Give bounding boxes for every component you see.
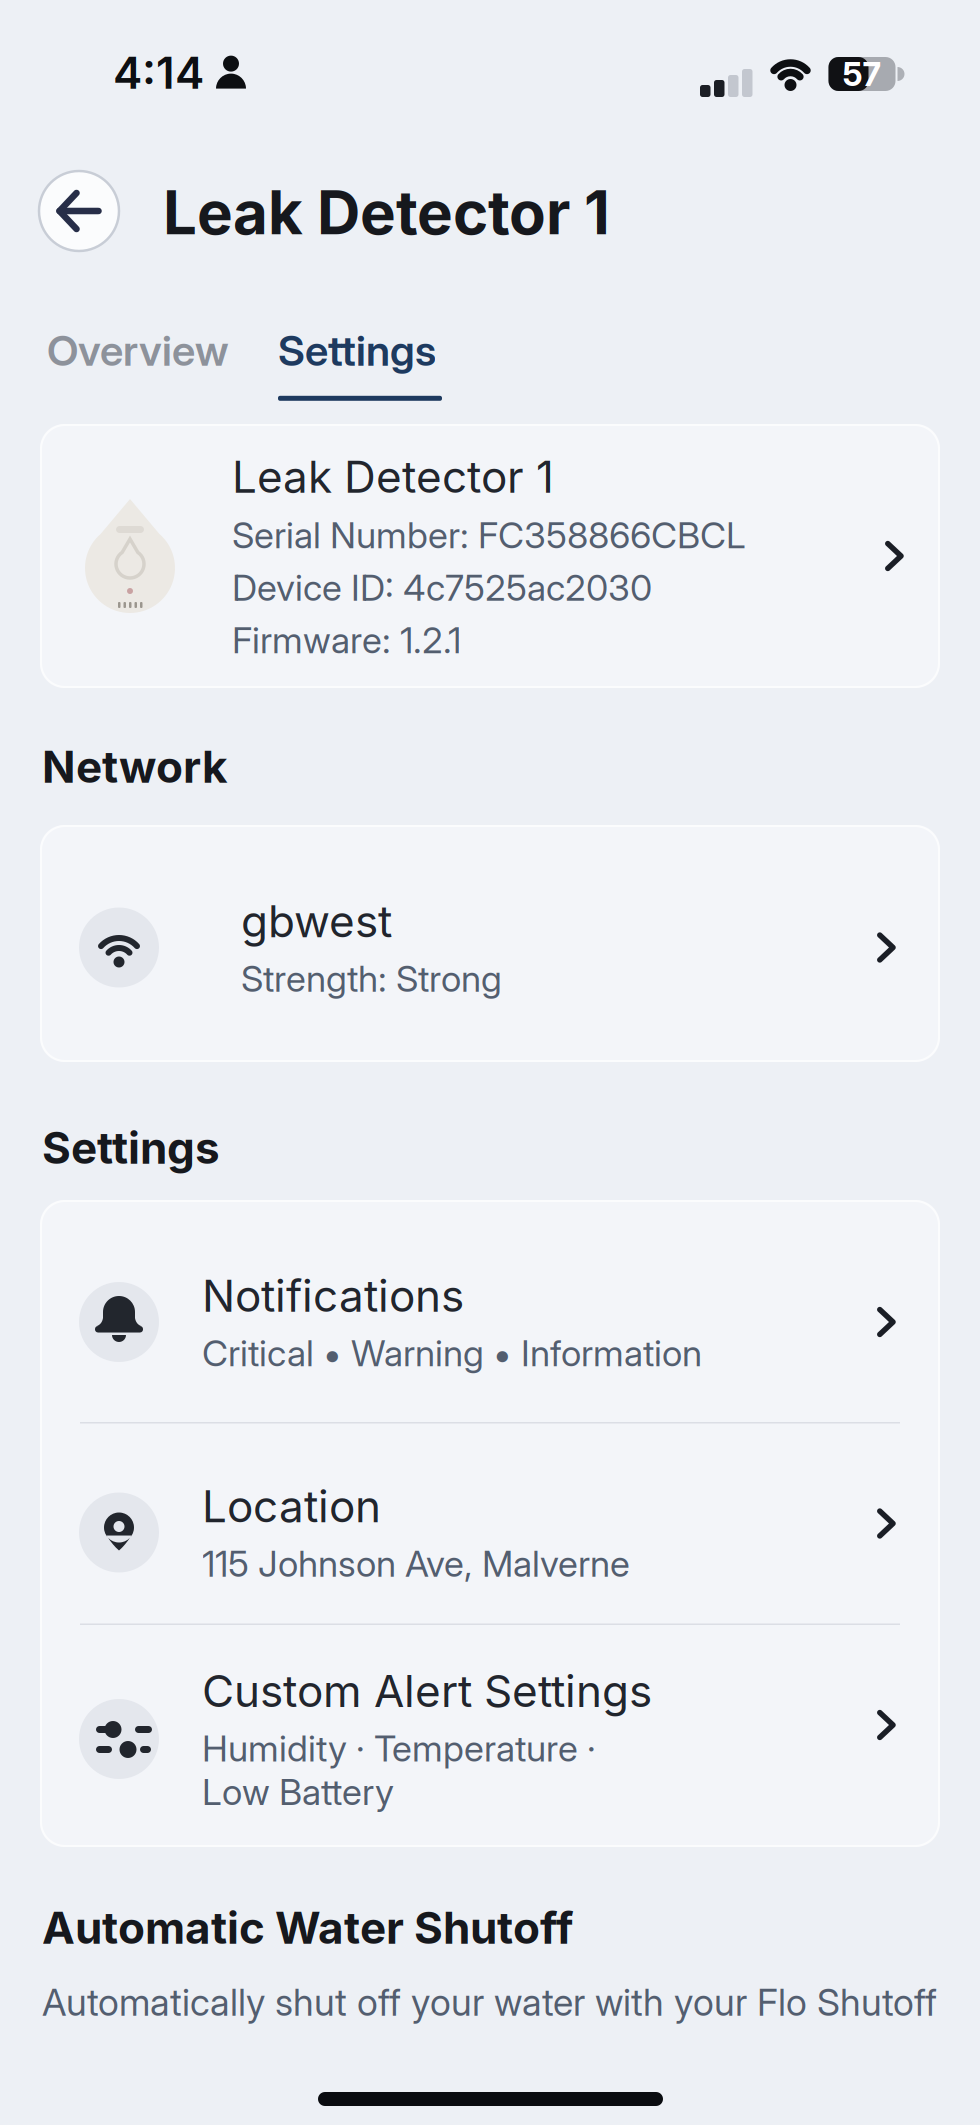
staticText: Settings — [278, 325, 436, 376]
staticText: Strength: Strong — [241, 957, 502, 1000]
staticText: gbwest — [241, 895, 392, 948]
staticText: Critical • Warning • Information — [202, 1331, 702, 1375]
staticText: Custom Alert Settings — [202, 1664, 652, 1717]
staticText: Device ID: 4c7525ac2030 — [232, 566, 652, 609]
staticText: Settings — [42, 1121, 220, 1174]
button[interactable]: Notifications — [40, 1222, 940, 1422]
staticText: Overview — [47, 325, 228, 376]
staticText: Network — [42, 740, 228, 793]
button[interactable]: Location — [40, 1423, 940, 1623]
staticText: Automatically shut off your water with y… — [42, 1980, 937, 2025]
button[interactable]: Leak Detector 1 — [40, 424, 940, 688]
staticText: Notifications — [202, 1269, 464, 1322]
staticText: Serial Number: FC358866CBCL — [232, 513, 746, 557]
button[interactable]: Overview — [47, 325, 228, 376]
staticText: Leak Detector 1 — [163, 176, 610, 249]
staticText: Automatic Water Shutoff — [42, 1901, 574, 1954]
staticText: 57 — [842, 54, 881, 94]
staticText: Humidity · Temperature · Low Battery — [202, 1727, 596, 1814]
staticText: Leak Detector 1 — [232, 450, 554, 503]
staticText: Firmware: 1.2.1 — [232, 618, 461, 662]
staticText: 4:14 — [113, 46, 204, 99]
button[interactable]: Custom Alert Settings — [40, 1625, 940, 1825]
button[interactable]: gbwest — [40, 825, 940, 1062]
staticText: 115 Johnson Ave, Malverne — [202, 1542, 630, 1585]
button[interactable]: Back — [39, 171, 119, 251]
button[interactable]: Settings — [278, 325, 442, 401]
staticText: Location — [202, 1480, 381, 1533]
